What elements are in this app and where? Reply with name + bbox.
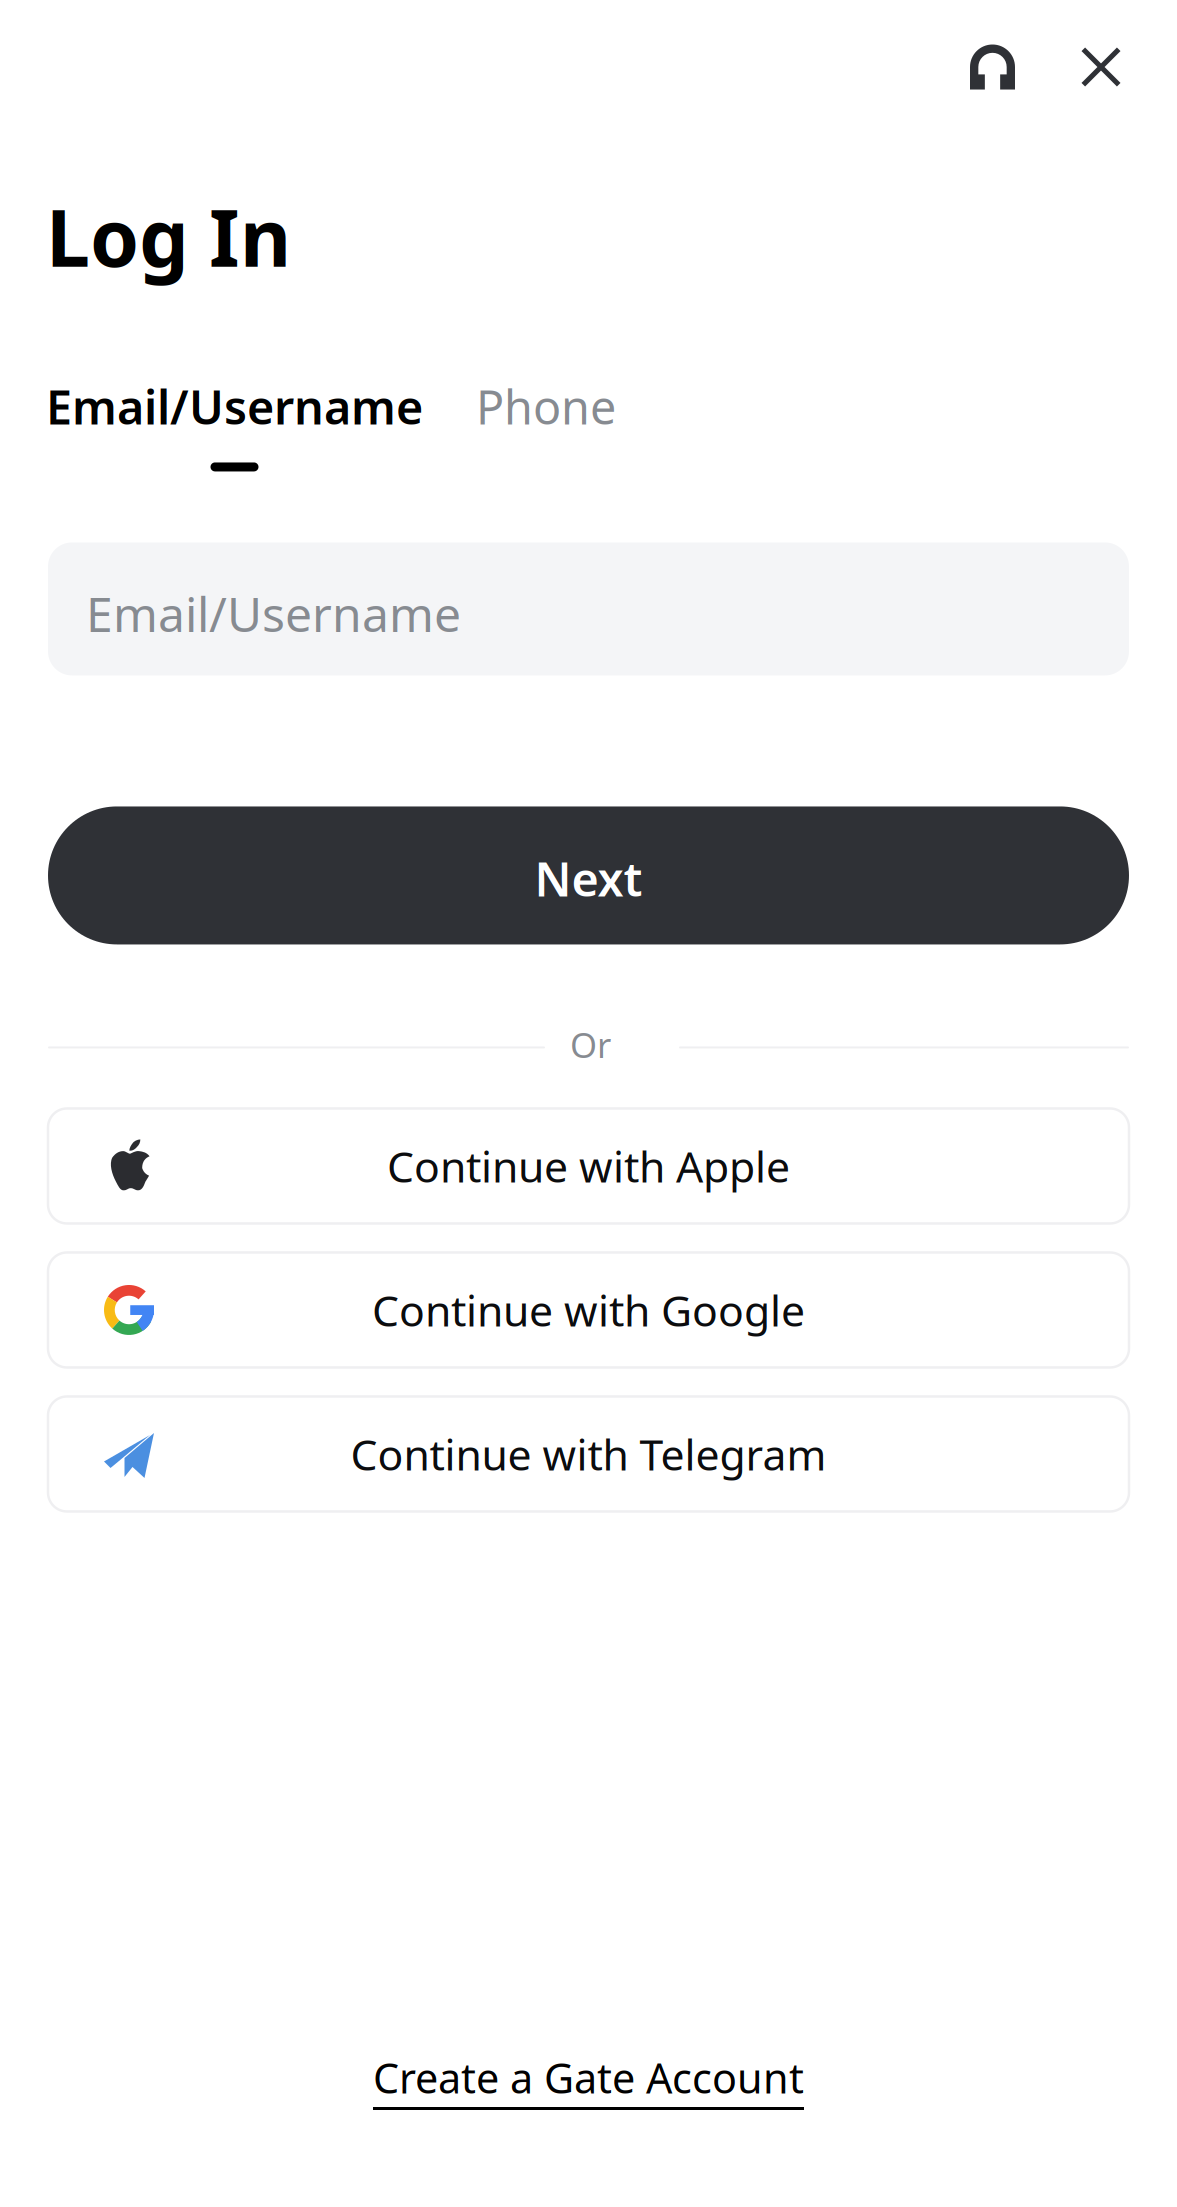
button[interactable]: Continue with Google — [48, 1252, 1129, 1367]
staticText: Next — [534, 847, 642, 909]
staticText: Continue with Apple — [387, 1138, 790, 1194]
button[interactable]: Email/Username — [46, 375, 423, 471]
staticText: Continue with Google — [372, 1282, 805, 1338]
button[interactable]: Continue with Apple — [48, 1108, 1129, 1223]
button[interactable]: Phone — [476, 375, 616, 437]
staticText: Log In — [46, 184, 291, 288]
staticText: Email/Username — [86, 582, 461, 645]
button[interactable]: Close — [1058, 19, 1144, 115]
staticText: Create a Gate Account — [373, 2050, 804, 2105]
staticText: Email/Username — [46, 375, 423, 437]
button[interactable]: Create a Gate Account — [373, 2050, 804, 2110]
staticText: Or — [570, 1021, 611, 1067]
staticText: Phone — [476, 375, 616, 437]
button[interactable]: Customer support — [927, 19, 1058, 115]
staticText: Continue with Telegram — [350, 1426, 826, 1482]
button[interactable]: Continue with Telegram — [48, 1396, 1129, 1511]
button[interactable]: Next — [48, 806, 1129, 944]
